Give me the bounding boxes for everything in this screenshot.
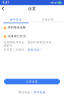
staticText: 为保障账号安全，请及时更新您的登录密码，: [3, 41, 51, 47]
staticText: 查看详情 >: [27, 48, 42, 51]
staticText: 账号安全: [10, 18, 22, 21]
staticText: 并开启二次验证。: [3, 48, 27, 51]
button[interactable]: 登录记录: [32, 10, 64, 24]
button[interactable]: 账号安全: [0, 10, 32, 24]
staticText: 遇到问题？: [18, 91, 33, 94]
staticText: 密码修改提醒: [8, 26, 26, 29]
button[interactable]: Back: [0, 6, 6, 12]
staticText: 设置: [28, 6, 36, 11]
button[interactable]: 立即设置: [4, 79, 60, 84]
staticText: 联系客服: [34, 91, 46, 94]
button[interactable]: 联系客服: [34, 91, 46, 94]
staticText: 登录记录: [42, 18, 54, 21]
button[interactable]: 密码修改提醒: [0, 25, 64, 30]
button[interactable]: 查看详情 >: [27, 48, 42, 51]
staticText: 设备锁已开启: [8, 34, 26, 38]
staticText: 立即设置: [26, 80, 38, 83]
button[interactable]: 设备锁已开启: [0, 33, 64, 39]
staticText: 9:41: [2, 1, 9, 4]
